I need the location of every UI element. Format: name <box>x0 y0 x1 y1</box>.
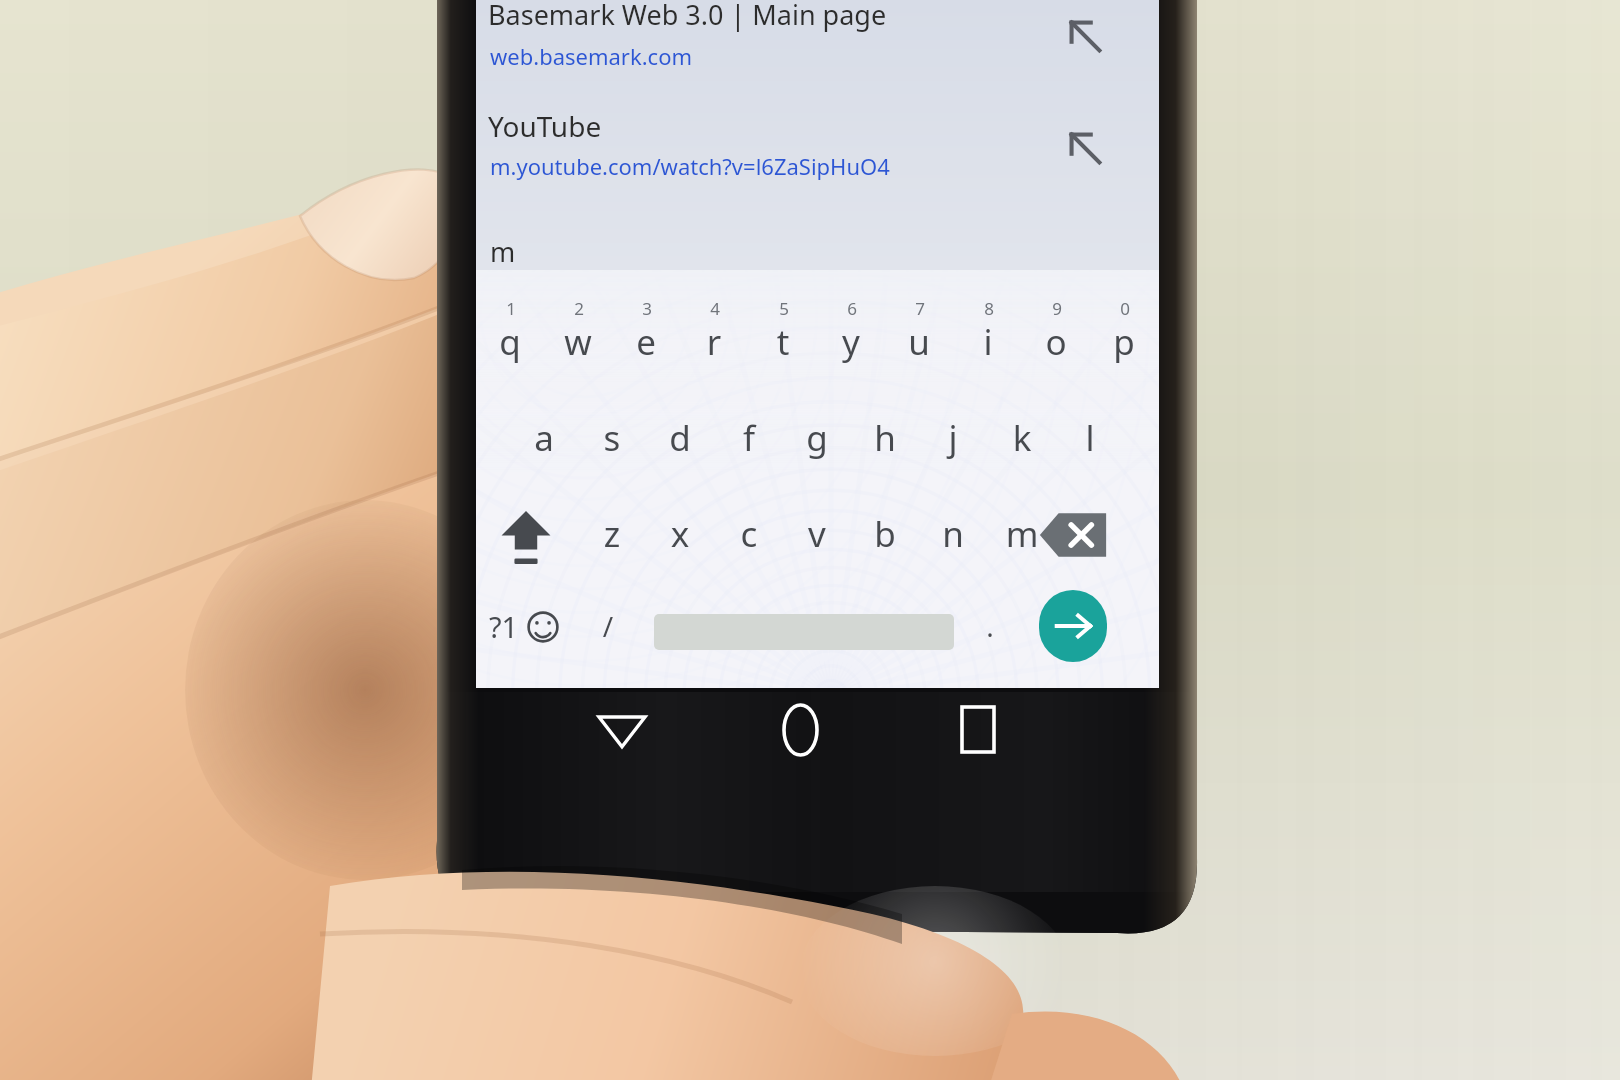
staticText: g <box>783 414 851 462</box>
button[interactable]: Go <box>1039 590 1107 662</box>
staticText: a <box>510 414 578 462</box>
staticText: x <box>646 510 714 558</box>
staticText: l <box>1056 414 1124 462</box>
button[interactable]: c <box>715 506 783 562</box>
button[interactable]: r <box>680 314 748 370</box>
staticText: v <box>783 510 851 558</box>
button[interactable]: q <box>476 314 544 370</box>
staticText: m <box>490 233 516 270</box>
staticText: y <box>817 318 885 366</box>
button[interactable]: x <box>646 506 714 562</box>
staticText: m.youtube.com/watch?v=l6ZaSipHuO4 <box>490 151 890 181</box>
button[interactable]: g <box>783 410 851 466</box>
button[interactable]: . <box>971 602 1009 650</box>
staticText: 5 <box>768 297 800 320</box>
staticText: s <box>578 414 646 462</box>
staticText: b <box>851 510 919 558</box>
staticText: web.basemark.com <box>490 41 693 71</box>
button[interactable]: m <box>988 506 1056 562</box>
staticText: 2 <box>563 297 595 320</box>
button[interactable]: i <box>954 314 1022 370</box>
staticText: 0 <box>1109 297 1141 320</box>
staticText: p <box>1090 318 1158 366</box>
staticText: k <box>988 414 1056 462</box>
button[interactable]: u <box>885 314 953 370</box>
button[interactable]: h <box>851 410 919 466</box>
button[interactable]: v <box>783 506 851 562</box>
button[interactable]: p <box>1090 314 1158 370</box>
staticText: 9 <box>1041 297 1073 320</box>
button[interactable]: j <box>919 410 987 466</box>
button[interactable]: Backspace <box>1037 509 1109 561</box>
button[interactable]: web.basemark.com <box>490 36 920 76</box>
button[interactable]: Shift <box>492 506 560 570</box>
button[interactable]: f <box>715 410 783 466</box>
staticText: r <box>680 318 748 366</box>
staticText: n <box>919 510 987 558</box>
staticText: 3 <box>631 297 663 320</box>
button[interactable]: l <box>1056 410 1124 466</box>
staticText: d <box>646 414 714 462</box>
staticText: . <box>971 607 1009 645</box>
button[interactable]: Insert suggestion <box>1061 12 1109 60</box>
staticText: c <box>715 510 783 558</box>
button[interactable]: Insert suggestion <box>1061 124 1109 172</box>
button[interactable]: m.youtube.com/watch?v=l6ZaSipHuO4 <box>490 146 970 186</box>
button[interactable]: Symbols and emoji <box>489 602 569 650</box>
staticText: 6 <box>836 297 868 320</box>
staticText: YouTube <box>488 107 602 145</box>
staticText: h <box>851 414 919 462</box>
button[interactable]: Basemark Web 3.0 | Main page <box>488 0 1088 42</box>
button[interactable]: o <box>1022 314 1090 370</box>
button[interactable]: s <box>578 410 646 466</box>
button[interactable]: w <box>544 314 612 370</box>
staticText: 4 <box>699 297 731 320</box>
staticText: f <box>715 414 783 462</box>
staticText: / <box>586 607 630 645</box>
staticText: 8 <box>973 297 1005 320</box>
staticText: z <box>578 510 646 558</box>
button[interactable]: k <box>988 410 1056 466</box>
button[interactable]: a <box>510 410 578 466</box>
button[interactable]: / <box>586 602 630 650</box>
staticText: u <box>885 318 953 366</box>
button[interactable]: t <box>749 314 817 370</box>
staticText: q <box>476 318 544 366</box>
button[interactable]: e <box>612 314 680 370</box>
staticText: m <box>988 510 1056 558</box>
button[interactable]: YouTube <box>488 104 808 148</box>
staticText: i <box>954 318 1022 366</box>
button[interactable]: b <box>851 506 919 562</box>
staticText: e <box>612 318 680 366</box>
button[interactable]: d <box>646 410 714 466</box>
button[interactable]: n <box>919 506 987 562</box>
staticText: o <box>1022 318 1090 366</box>
staticText: 7 <box>904 297 936 320</box>
staticText: t <box>749 318 817 366</box>
button[interactable]: y <box>817 314 885 370</box>
staticText: ?1 <box>489 607 519 646</box>
staticText: 1 <box>495 297 527 320</box>
staticText: Basemark Web 3.0 | Main page <box>488 0 887 33</box>
button[interactable]: z <box>578 506 646 562</box>
staticText: j <box>919 414 987 462</box>
staticText: w <box>544 318 612 366</box>
